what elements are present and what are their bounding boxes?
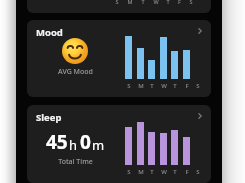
staticText: M <box>138 168 144 176</box>
staticText: S <box>189 0 193 5</box>
staticText: Total Time <box>58 157 93 167</box>
staticText: F <box>178 0 181 5</box>
staticText: S <box>127 168 131 176</box>
staticText: AVG Mood <box>58 67 93 77</box>
staticText: S <box>196 82 200 90</box>
staticText: T <box>173 168 177 176</box>
staticText: W <box>161 82 167 90</box>
staticText: M <box>138 82 144 90</box>
staticText: 45 <box>46 129 68 155</box>
staticText: S <box>196 168 200 176</box>
staticText: T <box>150 168 154 176</box>
button[interactable]: S <box>27 0 211 13</box>
button[interactable]: Open Mood details <box>193 24 207 38</box>
staticText: T <box>173 82 177 90</box>
staticText: Sleep <box>36 111 62 124</box>
staticText: F <box>185 168 189 176</box>
button[interactable]: Open Sleep details <box>193 109 207 123</box>
staticText: S <box>127 82 131 90</box>
staticText: W <box>161 168 167 176</box>
button[interactable]: Mood <box>27 20 211 97</box>
staticText: T <box>150 82 154 90</box>
staticText: M <box>127 0 133 5</box>
staticText: S <box>115 0 119 5</box>
staticText: h <box>69 136 78 154</box>
button[interactable]: Sleep <box>27 105 211 183</box>
staticText: T <box>166 0 170 5</box>
staticText: 0 <box>80 129 91 155</box>
staticText: T <box>141 0 145 5</box>
staticText: m <box>92 136 105 154</box>
staticText: W <box>153 0 159 5</box>
staticText: F <box>185 82 189 90</box>
staticText: Mood <box>36 26 63 39</box>
